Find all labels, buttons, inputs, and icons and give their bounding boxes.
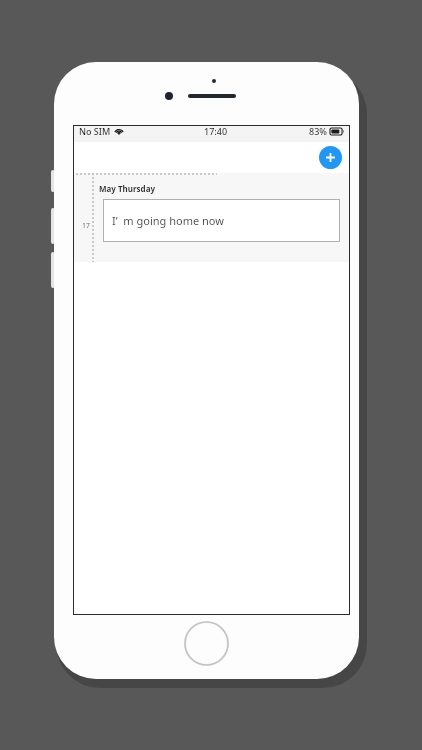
- staticText: No SIM: [79, 125, 111, 137]
- button[interactable]: Add note: [319, 146, 342, 169]
- staticText: 83%: [309, 125, 327, 137]
- button[interactable]: 17: [73, 173, 350, 262]
- staticText: I’ m going home now: [112, 213, 224, 228]
- button[interactable]: Home: [184, 621, 229, 666]
- staticText: 17: [80, 221, 92, 231]
- button[interactable]: I’ m going home now: [103, 199, 340, 242]
- staticText: May Thursday: [99, 183, 156, 194]
- staticText: 17:40: [204, 125, 228, 137]
